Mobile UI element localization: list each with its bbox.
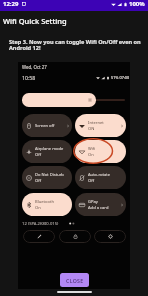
- button[interactable]: Do Not Disturb: [22, 166, 72, 189]
- button[interactable]: Screen off: [22, 114, 72, 137]
- staticText: Add a card: [88, 205, 109, 211]
- staticText: On: [35, 205, 41, 211]
- button[interactable]: Lock screen: [59, 230, 91, 243]
- staticText: ON: [88, 126, 95, 132]
- button[interactable]: Wifi: [75, 140, 126, 163]
- staticText: Wifi: [88, 146, 96, 152]
- button[interactable]: Auto-rotate: [75, 166, 126, 189]
- button[interactable]: Airplane mode: [22, 140, 72, 163]
- staticText: Off: [88, 178, 95, 184]
- staticText: GPay: [88, 199, 98, 205]
- staticText: Off: [35, 178, 42, 184]
- staticText: Wed, Oct 27: [22, 64, 47, 70]
- staticText: Airplane mode: [35, 146, 64, 152]
- staticText: Off: [35, 152, 42, 158]
- staticText: Auto-rotate: [88, 172, 111, 178]
- staticText: 12:29: [3, 0, 19, 8]
- staticText: Wifi Quick Setting: [3, 16, 67, 26]
- button[interactable]: CLOSE: [60, 273, 89, 287]
- staticText: 10:58: [22, 74, 36, 81]
- staticText: 51% 07:00: [111, 75, 130, 80]
- button[interactable]: [22, 93, 125, 107]
- staticText: On: [88, 152, 94, 158]
- button[interactable]: Bluetooth: [22, 193, 72, 216]
- button[interactable]: GPay: [75, 193, 126, 216]
- staticText: CLOSE: [66, 277, 84, 284]
- staticText: Step 3. Now you can toggle Wifi On/Off e…: [9, 38, 143, 51]
- staticText: Internet: [88, 120, 104, 126]
- staticText: Do Not Disturb: [35, 172, 64, 178]
- staticText: 100%: [129, 0, 145, 8]
- button[interactable]: Settings: [94, 230, 126, 243]
- staticText: Bluetooth: [35, 199, 54, 205]
- staticText: Screen off: [35, 123, 55, 129]
- button[interactable]: Internet: [75, 114, 126, 137]
- button[interactable]: Edit quick settings: [23, 230, 55, 243]
- staticText: 12 (SPA.2K8I0.015): [22, 221, 59, 227]
